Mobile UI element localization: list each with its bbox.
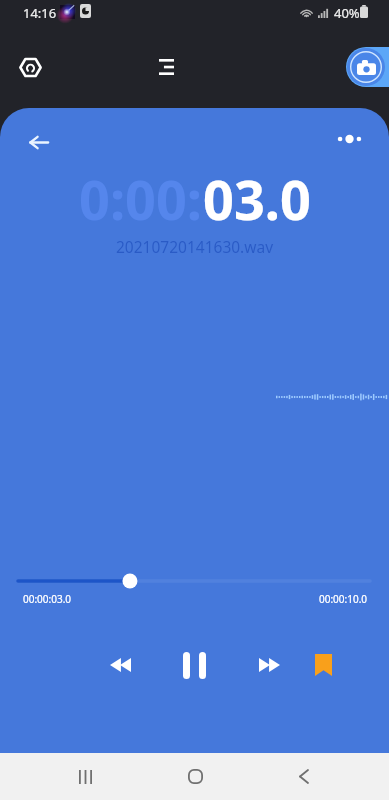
button[interactable]: Back xyxy=(280,753,328,800)
staticText: 40% xyxy=(334,4,360,22)
button[interactable]: Bookmark xyxy=(300,642,346,688)
staticText: 14:16 xyxy=(23,4,57,22)
button[interactable]: Home xyxy=(171,753,219,800)
staticText: 00:00:03.0 xyxy=(23,592,72,606)
button[interactable]: Camera xyxy=(346,47,389,87)
button[interactable]: Recents xyxy=(61,753,109,800)
staticText: 20210720141630.wav xyxy=(116,236,274,257)
button[interactable]: Rotate screen xyxy=(8,45,52,89)
staticText: 0:00: xyxy=(79,162,203,236)
staticText: 03.0 xyxy=(203,162,311,236)
button[interactable]: Fast forward xyxy=(246,642,292,688)
button[interactable]: More options xyxy=(327,117,371,161)
button[interactable]: Keyboard xyxy=(144,45,188,89)
button[interactable]: Back xyxy=(17,120,61,164)
button[interactable]: Pause xyxy=(171,642,217,688)
button[interactable]: Rewind xyxy=(97,642,143,688)
staticText: 00:00:10.0 xyxy=(319,592,368,606)
